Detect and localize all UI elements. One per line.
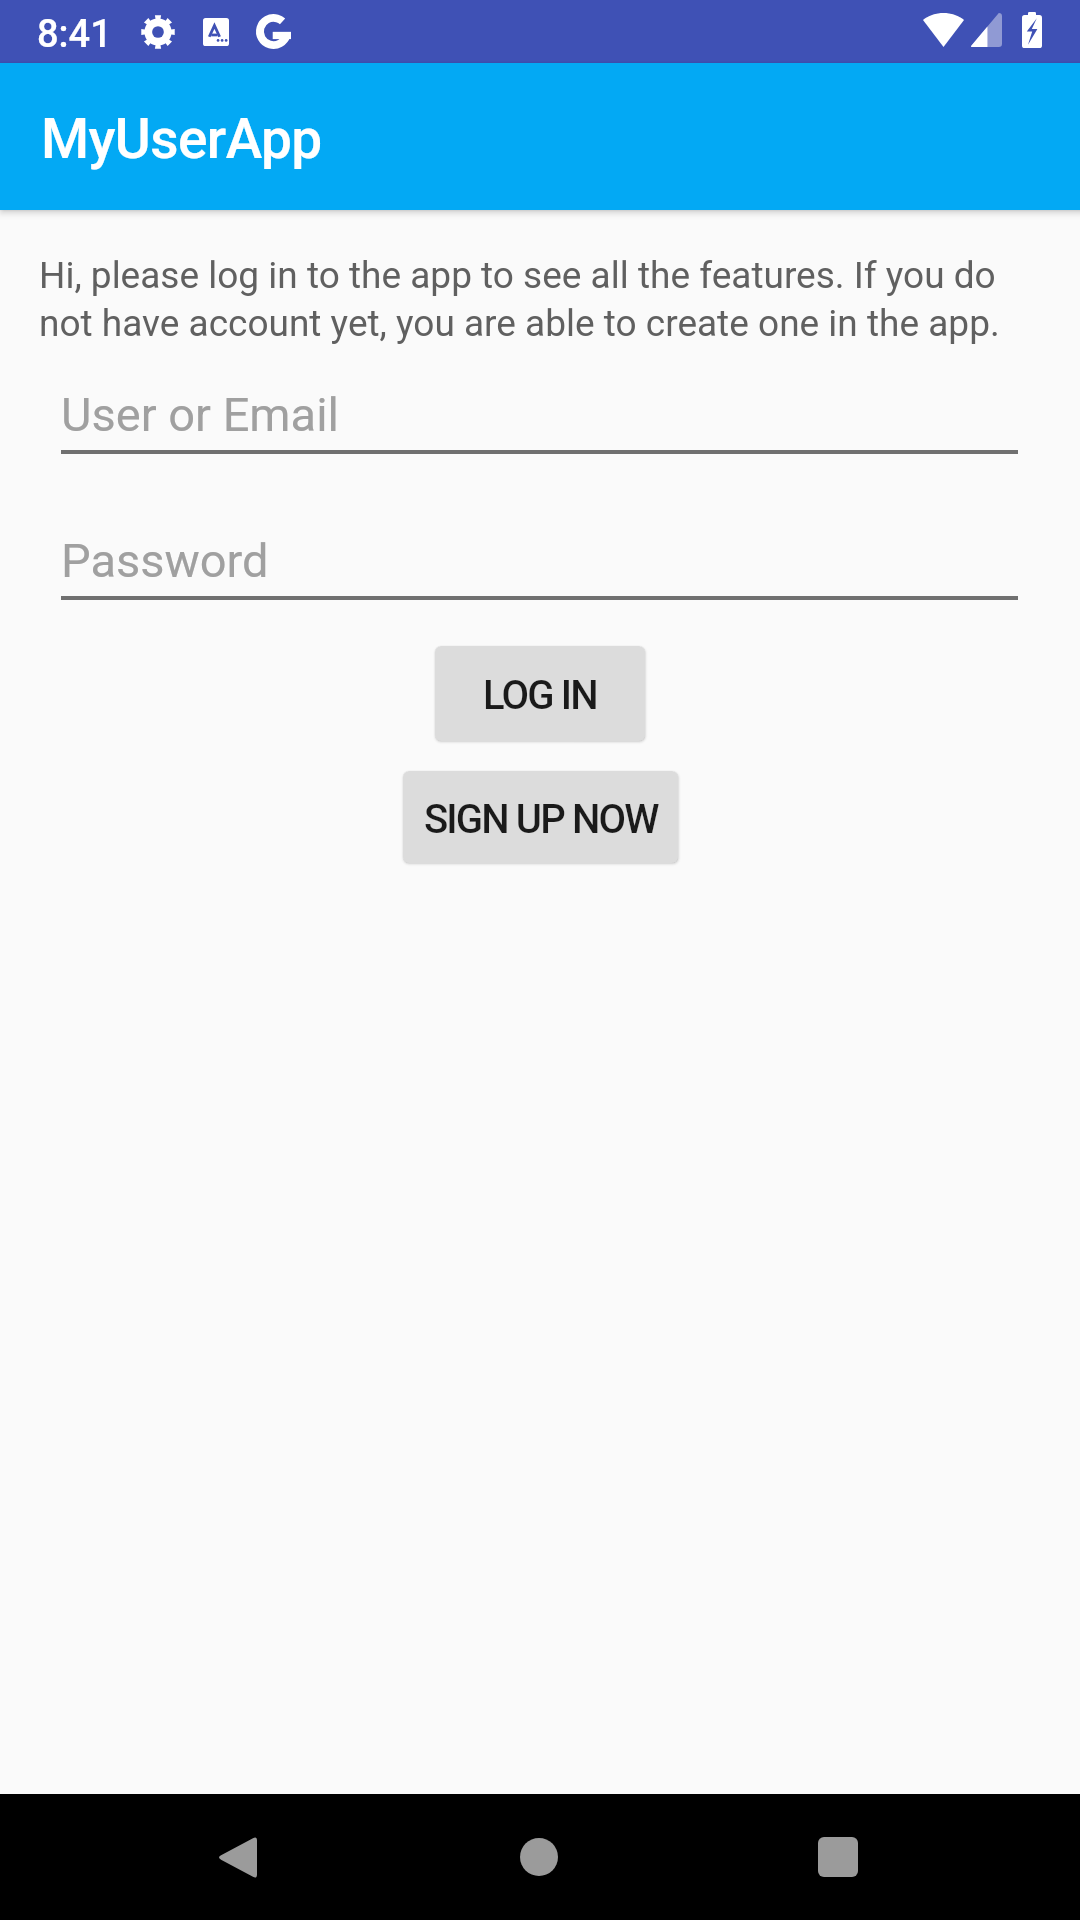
button[interactable]: LOG IN: [435, 646, 645, 741]
staticText: LOG IN: [483, 672, 597, 719]
button[interactable]: Home: [459, 1794, 619, 1920]
staticText: SIGN UP NOW: [424, 796, 658, 843]
button[interactable]: Recent apps: [758, 1794, 918, 1920]
staticText: Hi, please log in to the app to see all …: [39, 254, 1042, 345]
button[interactable]: Back: [159, 1794, 319, 1920]
button[interactable]: SIGN UP NOW: [403, 771, 678, 863]
staticText: Password: [61, 533, 269, 588]
staticText: 8:41: [37, 12, 112, 57]
staticText: MyUserApp: [41, 107, 322, 171]
staticText: User or Email: [61, 387, 339, 442]
